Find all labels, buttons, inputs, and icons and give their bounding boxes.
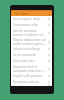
button[interactable]: Cupidatat non	[11, 85, 52, 86]
other: Open item	[47, 53, 51, 57]
other: Open item	[47, 80, 51, 84]
staticText: Laboris nisi aliquip	[13, 47, 46, 51]
button[interactable]: More options	[47, 12, 51, 16]
button[interactable]: Lorem ipsum dolor	[11, 16, 52, 22]
other: Open item	[47, 74, 51, 78]
staticText: Ex ea commodo	[13, 53, 46, 57]
other: Open item	[47, 40, 51, 44]
button[interactable]: Reprehenderit in voluptate velit esse ci…	[11, 64, 52, 73]
other: Open item	[47, 17, 51, 21]
other: Open item	[47, 59, 51, 63]
button[interactable]: Magna aliqua enim ad minim veniam quis n…	[11, 37, 52, 46]
other: Open item	[47, 23, 51, 27]
staticText: My Tasks	[15, 12, 29, 16]
other: Open item	[47, 31, 51, 35]
button[interactable]: My Tasks	[11, 11, 52, 16]
button[interactable]: Ex ea commodo	[11, 52, 52, 58]
button[interactable]: Duis aute irure	[11, 58, 52, 64]
button[interactable]: Sed do eiusmod tempor incididunt ut labo…	[11, 28, 52, 37]
staticText: Sed do eiusmod tempor incididunt ut labo…	[13, 29, 46, 37]
other: Open item	[47, 47, 51, 51]
staticText: Duis aute irure	[13, 59, 46, 63]
other: Open item	[47, 85, 51, 86]
staticText: Consectetur adip	[13, 23, 46, 27]
button[interactable]: Fugiat nulla pariatur	[11, 73, 52, 79]
staticText: Excepteur sint occ	[13, 80, 46, 84]
staticText: Fugiat nulla pariatur	[13, 74, 46, 78]
button[interactable]: Excepteur sint occ	[11, 79, 52, 85]
staticText: Cupidatat non	[13, 85, 46, 86]
other: Open item	[47, 67, 51, 71]
button[interactable]: Laboris nisi aliquip	[11, 46, 52, 52]
staticText: Magna aliqua enim ad minim veniam quis n…	[13, 38, 46, 46]
staticText: Lorem ipsum dolor	[13, 17, 46, 21]
staticText: Reprehenderit in voluptate velit esse ci…	[13, 65, 46, 73]
button[interactable]: Consectetur adip	[11, 22, 52, 28]
